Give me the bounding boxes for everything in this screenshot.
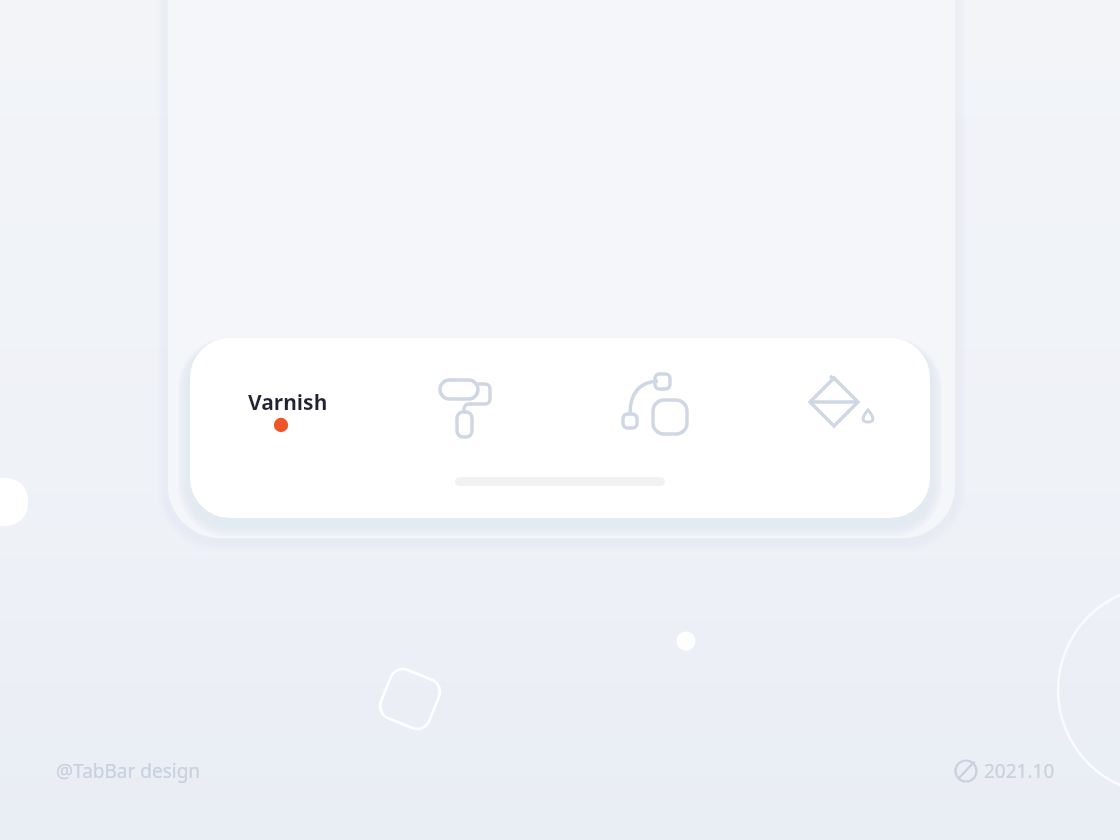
staticText: Varnish bbox=[248, 388, 328, 417]
button[interactable]: Shapes bbox=[593, 345, 713, 461]
staticText: 2021.10 bbox=[984, 758, 1055, 784]
staticText: @TabBar design bbox=[56, 758, 201, 784]
button[interactable]: Varnish bbox=[210, 360, 360, 452]
button[interactable]: Paint bucket bbox=[778, 345, 898, 461]
button[interactable]: Paint roller bbox=[406, 345, 526, 461]
